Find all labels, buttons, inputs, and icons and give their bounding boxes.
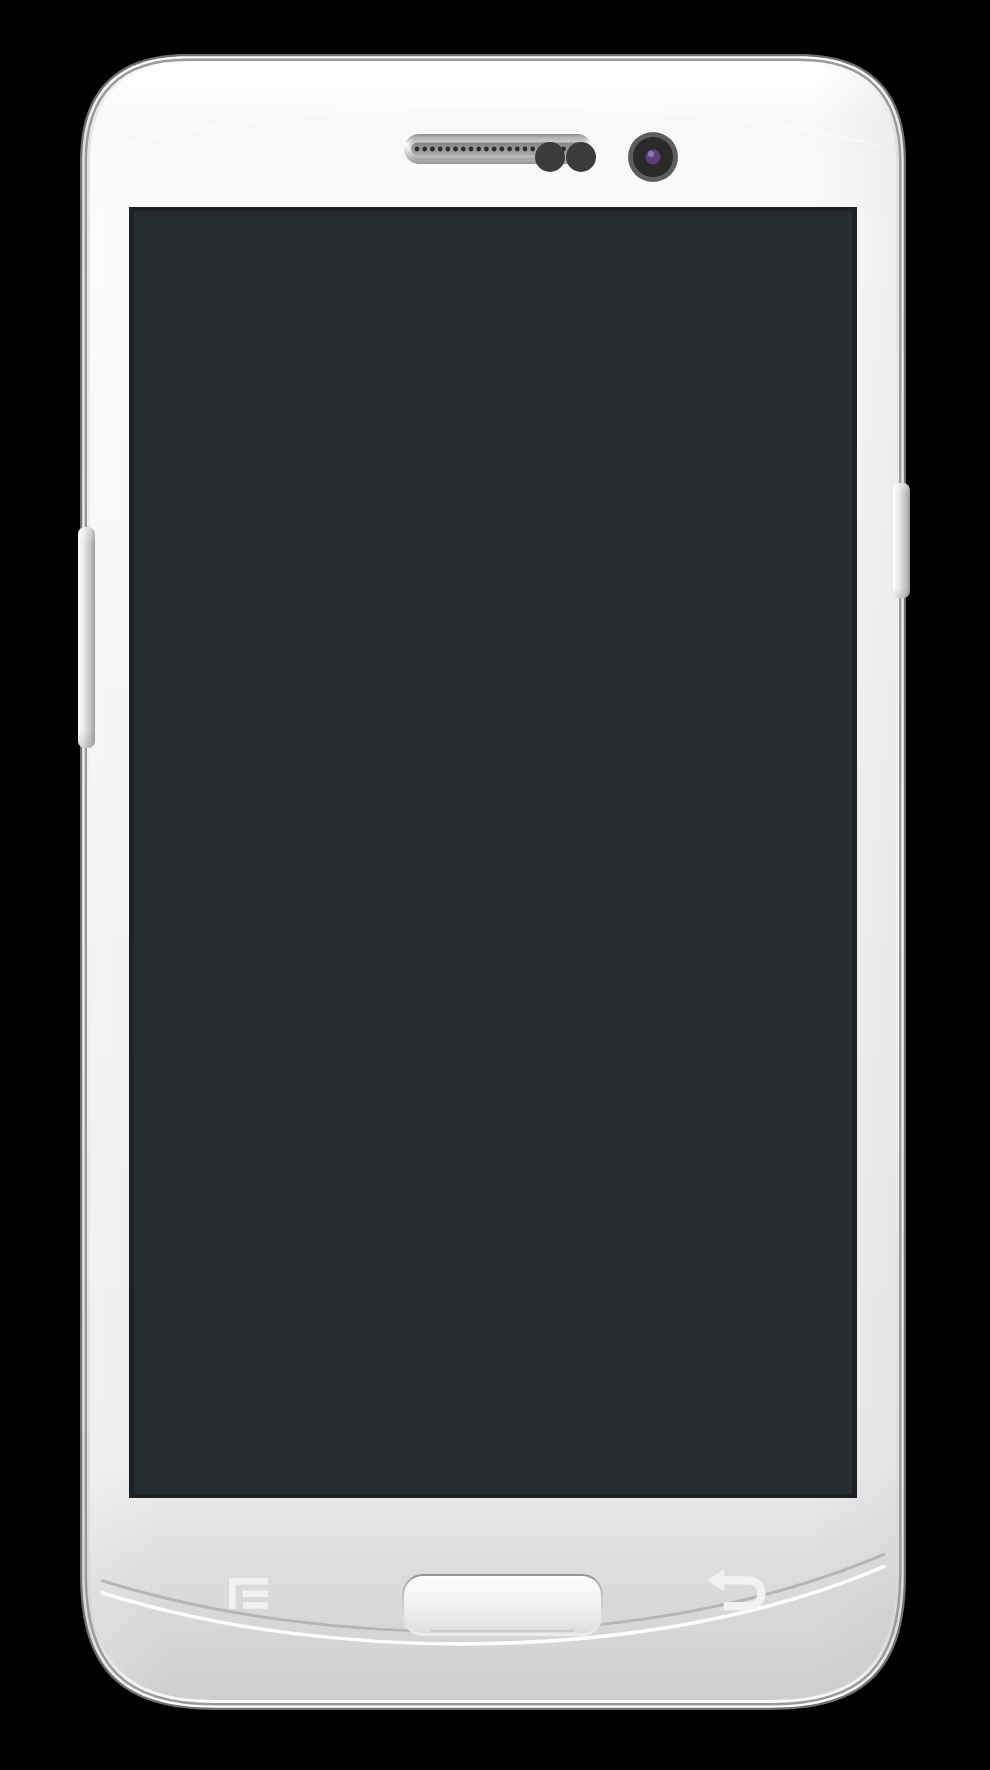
button[interactable]: Back — [706, 1573, 762, 1610]
button[interactable]: Home — [403, 1575, 600, 1631]
button[interactable]: Volume — [78, 527, 94, 748]
button[interactable]: Menu — [228, 1577, 267, 1608]
button[interactable]: Power — [892, 483, 908, 598]
